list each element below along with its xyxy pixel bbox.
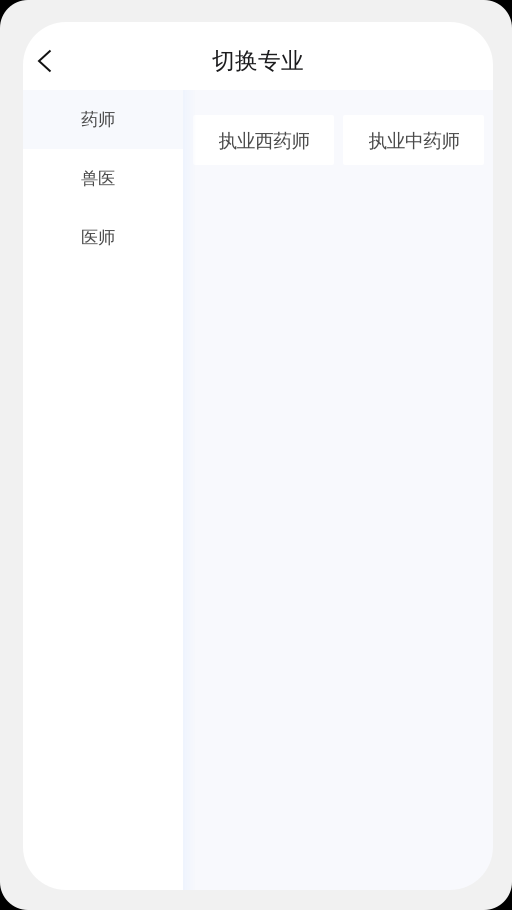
staticText: 医师 <box>81 227 115 248</box>
button[interactable]: 药师 <box>23 90 183 149</box>
staticText: 执业中药师 <box>369 129 460 152</box>
button[interactable]: 执业中药师 <box>343 115 484 165</box>
staticText: 切换专业 <box>212 47 304 75</box>
button[interactable]: Back <box>23 38 67 84</box>
button[interactable]: 医师 <box>23 208 183 267</box>
button[interactable]: 兽医 <box>23 149 183 208</box>
staticText: 执业西药师 <box>219 129 310 152</box>
button[interactable]: 执业西药师 <box>193 115 334 165</box>
staticText: 药师 <box>81 109 115 130</box>
staticText: 兽医 <box>81 168 115 189</box>
